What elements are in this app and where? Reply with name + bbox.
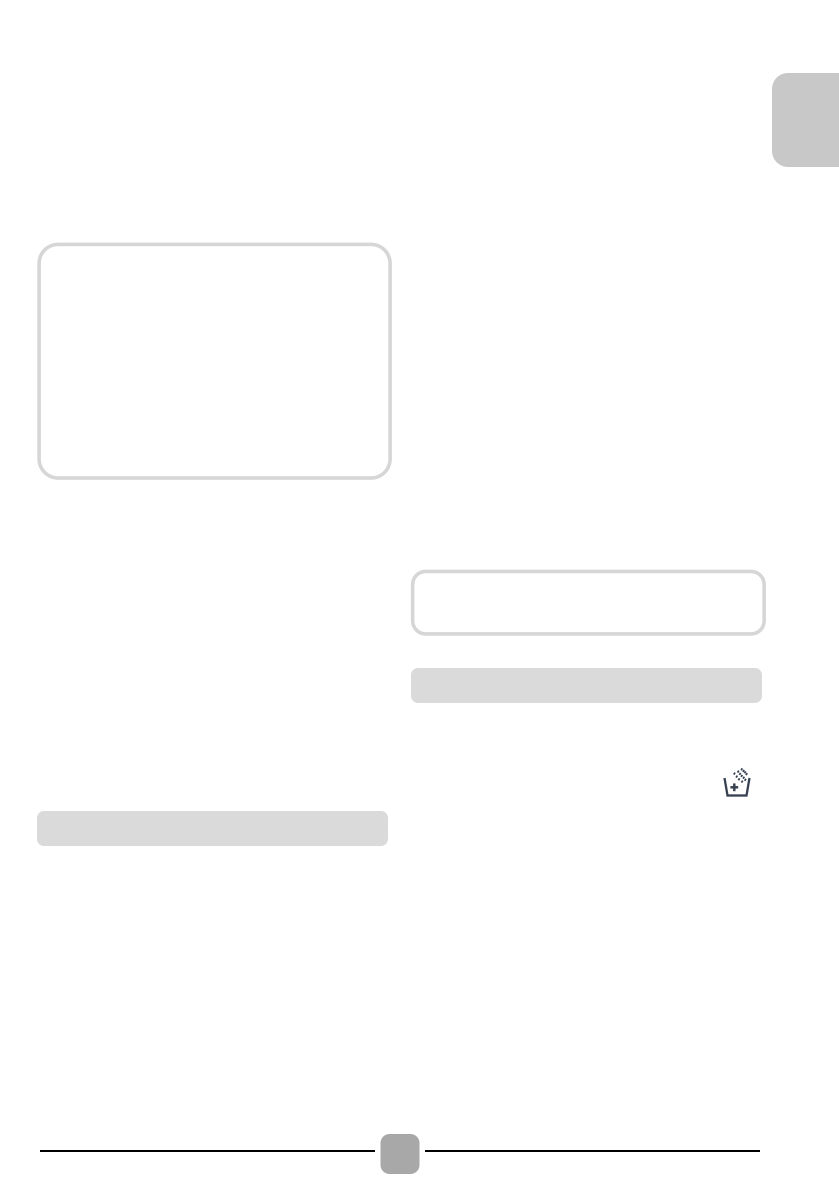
button[interactable]: Section index tab: [772, 73, 839, 167]
button[interactable]: Wash with detergent care symbol: [718, 763, 760, 805]
button[interactable]: Illustration: [39, 244, 390, 478]
button[interactable]: Note box: [413, 571, 764, 634]
